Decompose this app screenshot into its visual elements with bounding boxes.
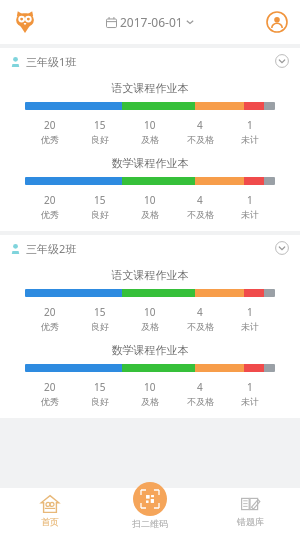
staticText: 10 (144, 193, 156, 207)
staticText: 未计 (241, 134, 259, 145)
staticText: 三年级2班 (26, 241, 77, 256)
button[interactable]: Account (264, 9, 290, 35)
staticText: 良好 (91, 209, 109, 220)
staticText: 不及格 (187, 396, 214, 407)
staticText: 20 (44, 305, 56, 319)
staticText: 20 (44, 118, 56, 132)
staticText: 扫二维码 (132, 518, 168, 529)
staticText: 4 (197, 305, 203, 319)
staticText: 及格 (141, 209, 159, 220)
button[interactable]: 2017-06-01 (100, 10, 200, 34)
staticText: 2017-06-01 (120, 14, 183, 30)
button[interactable]: 首页 (0, 488, 100, 533)
button[interactable]: Collapse (274, 53, 290, 69)
staticText: 及格 (141, 134, 159, 145)
staticText: 1 (247, 305, 253, 319)
button[interactable]: 三年级2班 (0, 235, 300, 261)
staticText: 15 (94, 305, 106, 319)
staticText: 语文课程作业本 (0, 268, 300, 282)
staticText: 4 (197, 380, 203, 394)
button[interactable]: Logo (10, 7, 40, 37)
staticText: 15 (94, 118, 106, 132)
staticText: 良好 (91, 396, 109, 407)
staticText: 1 (247, 193, 253, 207)
staticText: 不及格 (187, 321, 214, 332)
staticText: 优秀 (41, 396, 59, 407)
staticText: 良好 (91, 321, 109, 332)
staticText: 及格 (141, 396, 159, 407)
staticText: 20 (44, 380, 56, 394)
staticText: 不及格 (187, 134, 214, 145)
button[interactable]: 错题库 (200, 488, 300, 533)
staticText: 优秀 (41, 134, 59, 145)
staticText: 10 (144, 380, 156, 394)
staticText: 15 (94, 380, 106, 394)
staticText: 未计 (241, 396, 259, 407)
other: Scan QR code (133, 482, 167, 516)
staticText: 15 (94, 193, 106, 207)
button[interactable]: 三年级1班 (0, 48, 300, 74)
staticText: 三年级1班 (26, 54, 77, 69)
staticText: 未计 (241, 321, 259, 332)
staticText: 20 (44, 193, 56, 207)
staticText: 未计 (241, 209, 259, 220)
staticText: 4 (197, 193, 203, 207)
staticText: 数学课程作业本 (0, 156, 300, 170)
staticText: 优秀 (41, 321, 59, 332)
staticText: 1 (247, 118, 253, 132)
staticText: 及格 (141, 321, 159, 332)
staticText: 良好 (91, 134, 109, 145)
staticText: 数学课程作业本 (0, 343, 300, 357)
staticText: 优秀 (41, 209, 59, 220)
staticText: 4 (197, 118, 203, 132)
staticText: 不及格 (187, 209, 214, 220)
staticText: 首页 (41, 516, 59, 527)
button[interactable]: Collapse (274, 240, 290, 256)
staticText: 10 (144, 305, 156, 319)
staticText: 1 (247, 380, 253, 394)
staticText: 10 (144, 118, 156, 132)
staticText: 语文课程作业本 (0, 81, 300, 95)
staticText: 错题库 (237, 516, 264, 527)
button[interactable]: Scan QR code (100, 488, 200, 533)
